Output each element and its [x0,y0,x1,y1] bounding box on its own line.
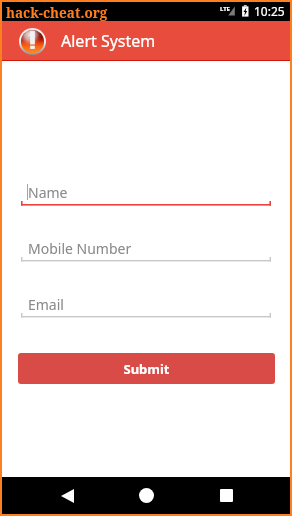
staticText: Mobile Number [28,239,132,257]
staticText: 10:25 [254,3,285,19]
button[interactable]: Email [21,295,271,320]
other: Alert System logo [19,27,46,56]
staticText: Alert System [61,30,156,52]
button[interactable]: Recent apps [201,477,251,514]
staticText: Email [28,295,64,313]
button[interactable]: Back [42,477,92,514]
staticText: Submit [123,360,170,378]
button[interactable]: Mobile Number [21,239,271,264]
staticText: Name [28,183,68,201]
button[interactable]: Submit [18,353,275,384]
button[interactable]: Home [121,477,171,514]
button[interactable]: Name [21,183,271,208]
staticText: hack-cheat.org [6,4,108,21]
staticText: LTE [220,5,230,13]
